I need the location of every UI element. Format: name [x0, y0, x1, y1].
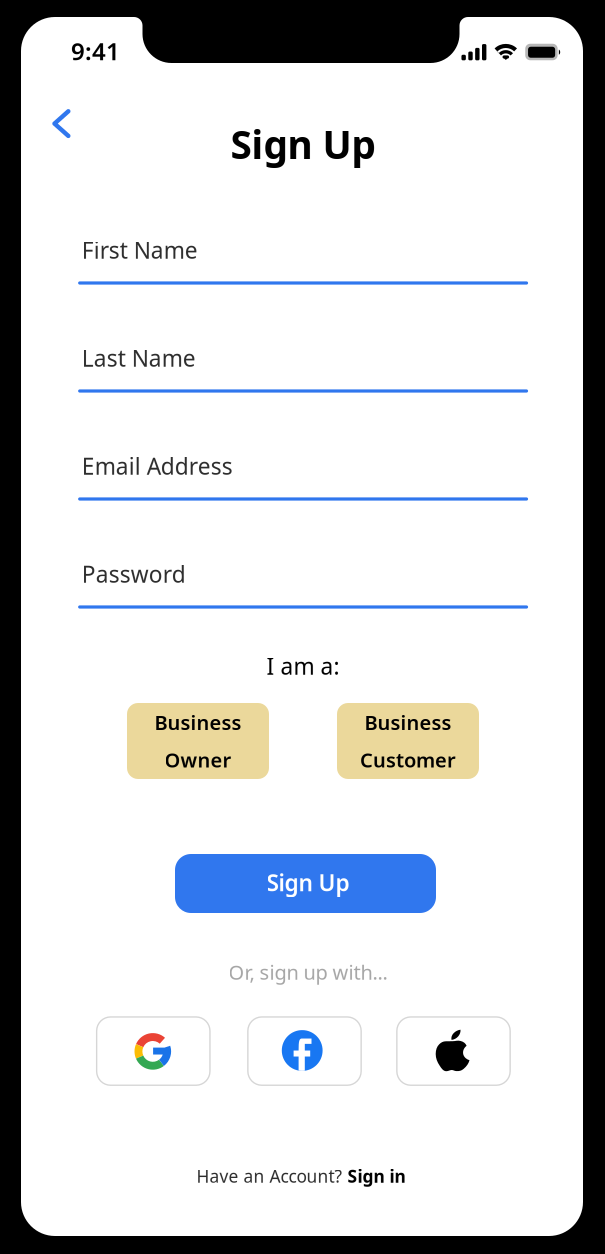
button[interactable]: Business — [127, 703, 269, 779]
staticText: Sign Up — [230, 118, 375, 170]
staticText: Sign in — [347, 1164, 405, 1187]
staticText: Customer — [360, 746, 456, 773]
button[interactable]: Sign up with Apple — [397, 1017, 510, 1085]
staticText: Or, sign up with... — [228, 959, 387, 985]
staticText: 9:41 — [71, 35, 120, 67]
staticText: Email Address — [82, 451, 233, 481]
staticText: Business — [154, 709, 241, 735]
staticText: Password — [82, 559, 186, 589]
button[interactable]: Sign Up — [175, 854, 436, 913]
staticText: I am a: — [266, 651, 339, 681]
staticText: Business — [364, 709, 451, 735]
button[interactable]: Business — [337, 703, 479, 779]
button[interactable]: Back — [38, 101, 84, 147]
staticText: Sign Up — [266, 867, 349, 897]
button[interactable]: Sign up with Google — [97, 1017, 210, 1085]
staticText: Owner — [164, 746, 231, 773]
button[interactable]: Have an Account? — [196, 1164, 405, 1187]
staticText: Last Name — [82, 343, 196, 373]
staticText: Have an Account? — [196, 1164, 347, 1187]
button[interactable]: Sign up with Facebook — [248, 1017, 361, 1085]
staticText: First Name — [82, 235, 198, 265]
